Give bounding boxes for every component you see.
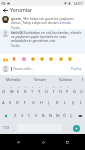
button[interactable]: A bbox=[0, 96, 7, 109]
staticText: 4 bbox=[25, 86, 27, 89]
staticText: 3 bbox=[18, 86, 20, 89]
button[interactable]: Merhaba bbox=[0, 75, 27, 83]
button[interactable]: C bbox=[26, 109, 33, 122]
staticText: P bbox=[66, 89, 69, 94]
button[interactable]: 1 bbox=[0, 83, 8, 96]
button[interactable]: H bbox=[37, 96, 45, 109]
button[interactable]: gizem_ Merhaba cok guzel bir paylasim ol… bbox=[0, 14, 85, 29]
button[interactable]: D bbox=[14, 96, 21, 109]
button[interactable]: F bbox=[21, 96, 29, 109]
staticText: L bbox=[64, 100, 67, 105]
button[interactable]: L bbox=[61, 96, 69, 109]
staticText: W bbox=[10, 89, 14, 94]
button[interactable]: X bbox=[19, 109, 26, 122]
staticText: S bbox=[9, 100, 12, 105]
button[interactable]: Z bbox=[11, 109, 19, 122]
button[interactable]: N bbox=[47, 109, 54, 122]
staticText: U bbox=[45, 89, 48, 94]
staticText: 9 bbox=[60, 86, 62, 89]
button[interactable]: Tamam bbox=[27, 75, 53, 83]
staticText: R bbox=[24, 89, 27, 94]
button[interactable]: Send bbox=[68, 122, 85, 134]
staticText: B bbox=[42, 113, 45, 118]
button[interactable]: ?123 bbox=[0, 122, 12, 134]
staticText: , bbox=[14, 126, 16, 131]
button[interactable]: Shift bbox=[0, 109, 11, 122]
button[interactable]: 2 bbox=[8, 83, 15, 96]
button[interactable]: Ç bbox=[68, 109, 75, 122]
staticText: 6 bbox=[39, 86, 41, 89]
staticText: V bbox=[35, 113, 38, 118]
button[interactable]: V bbox=[33, 109, 40, 122]
button[interactable]: 3 bbox=[15, 83, 22, 96]
staticText: M bbox=[56, 113, 60, 118]
staticText: 1 bbox=[3, 86, 5, 89]
button[interactable]: 4 bbox=[22, 83, 29, 96]
button[interactable]: Ğ bbox=[71, 83, 78, 96]
button[interactable]: Ü bbox=[78, 83, 85, 96]
button[interactable]: J bbox=[45, 96, 53, 109]
staticText: ?123 bbox=[3, 126, 10, 130]
staticText: Merhaba bbox=[6, 77, 21, 82]
button[interactable]: Raising hands emoji bbox=[2, 56, 8, 62]
staticText: I bbox=[53, 89, 55, 94]
button[interactable]: Kullanıcı bbox=[53, 75, 79, 83]
staticText: X bbox=[21, 113, 24, 118]
button[interactable]: Emoji bbox=[30, 56, 36, 62]
staticText: gizem_ Merhaba cok guzel bir paylasim ol… bbox=[11, 16, 83, 25]
button[interactable]: Ş bbox=[69, 96, 77, 109]
staticText: F bbox=[24, 100, 27, 105]
button[interactable]: Emoji bbox=[48, 56, 54, 62]
staticText: O bbox=[59, 89, 63, 94]
staticText: C bbox=[28, 113, 31, 118]
staticText: D bbox=[16, 100, 19, 105]
staticText: T bbox=[31, 89, 34, 94]
staticText: Ğ bbox=[73, 89, 76, 94]
button[interactable]: Yanıtla bbox=[11, 26, 20, 29]
button[interactable]: Home bbox=[37, 136, 49, 148]
staticText: 8 bbox=[53, 86, 55, 89]
staticText: Yorum ekle... bbox=[13, 66, 34, 71]
staticText: 7 bbox=[46, 86, 48, 89]
button[interactable]: 7 bbox=[43, 83, 50, 96]
button[interactable]: Ö bbox=[61, 109, 68, 122]
button[interactable]: Back bbox=[0, 6, 10, 14]
button[interactable]: 8 bbox=[50, 83, 57, 96]
button[interactable]: fatih34 Bunlardan en cok bunlardan, elim… bbox=[0, 29, 85, 54]
button[interactable]: B bbox=[40, 109, 47, 122]
staticText: G bbox=[32, 100, 35, 105]
button[interactable]: 0 bbox=[64, 83, 71, 96]
button[interactable]: 6 bbox=[36, 83, 43, 96]
button[interactable]: Paylaş bbox=[70, 65, 83, 72]
button[interactable]: G bbox=[29, 96, 37, 109]
staticText: Ş bbox=[72, 100, 75, 105]
staticText: Q bbox=[2, 89, 6, 94]
staticText: Yanıtla bbox=[11, 44, 20, 48]
button[interactable]: Yanıtla bbox=[11, 44, 20, 48]
button[interactable]: 5 bbox=[29, 83, 36, 96]
staticText: fatih34 Bunlardan en cok bunlardan, elim… bbox=[11, 30, 83, 43]
button[interactable]: K bbox=[53, 96, 61, 109]
button[interactable]: More options bbox=[79, 75, 85, 83]
staticText: Y bbox=[38, 89, 41, 94]
button[interactable]: , bbox=[12, 122, 17, 134]
button[interactable]: S bbox=[7, 96, 14, 109]
button[interactable]: Back bbox=[12, 136, 24, 148]
button[interactable]: Emoji bbox=[39, 56, 45, 62]
button[interactable]: Fire emoji bbox=[11, 56, 17, 62]
button[interactable]: Emoji bbox=[58, 56, 64, 62]
staticText: Ö bbox=[63, 113, 67, 118]
staticText: 14:07 bbox=[73, 1, 83, 6]
staticText: . bbox=[64, 126, 66, 131]
button[interactable]: Recent apps bbox=[61, 136, 73, 148]
staticText: Z bbox=[14, 113, 17, 118]
button[interactable]: Backspace bbox=[75, 109, 85, 122]
button[interactable]: Flower emoji bbox=[21, 56, 27, 62]
button[interactable]: M bbox=[54, 109, 61, 122]
staticText: N bbox=[49, 113, 53, 118]
button[interactable]: Emoji bbox=[67, 56, 73, 62]
button[interactable]: İ bbox=[77, 96, 85, 109]
button[interactable]: 9 bbox=[57, 83, 64, 96]
